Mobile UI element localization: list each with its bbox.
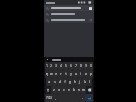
other: Search <box>46 13 49 16</box>
staticText: h <box>74 80 76 84</box>
staticText: 6 <box>70 64 72 68</box>
button[interactable]: Search <box>44 5 94 11</box>
button[interactable]: g <box>67 78 72 86</box>
button[interactable]: o <box>83 70 88 78</box>
staticText: b <box>73 88 75 92</box>
button[interactable]: e <box>53 70 58 78</box>
staticText: 7 <box>75 64 77 68</box>
staticText: 3 <box>55 64 57 68</box>
staticText: , <box>55 96 56 100</box>
staticText: 9 <box>85 64 87 68</box>
button[interactable]: k <box>82 78 87 86</box>
button[interactable]: p <box>88 70 93 78</box>
button[interactable]: m <box>81 86 86 94</box>
staticText: t <box>65 72 67 76</box>
button[interactable]: t <box>63 70 68 78</box>
button[interactable]: u <box>73 70 78 78</box>
staticText: m <box>82 88 85 92</box>
button[interactable]: f <box>62 78 67 86</box>
button[interactable]: x <box>56 86 61 94</box>
other: Search <box>46 7 49 10</box>
button[interactable]: Search <box>44 11 94 17</box>
staticText: 2 <box>50 64 52 68</box>
button[interactable]: i <box>78 70 83 78</box>
staticText: o <box>85 72 87 76</box>
button[interactable]: w <box>49 70 53 78</box>
other: Search <box>46 19 49 22</box>
staticText: s <box>54 80 56 84</box>
staticText: 8 <box>80 64 82 68</box>
button[interactable]: 5 <box>63 62 68 70</box>
button[interactable]: 2 <box>49 62 53 70</box>
button[interactable]: v <box>66 86 71 94</box>
button[interactable]: 1 <box>45 62 49 70</box>
button[interactable]: Search <box>44 17 94 23</box>
staticText: 0 <box>90 64 92 68</box>
button[interactable]: 8 <box>78 62 83 70</box>
button[interactable]: h <box>72 78 77 86</box>
staticText: k <box>84 80 86 84</box>
staticText: u <box>75 72 77 76</box>
button[interactable]: 0 <box>88 62 93 70</box>
staticText: l <box>89 80 90 84</box>
staticText: x <box>58 88 60 92</box>
other: Insert suggestion <box>89 19 92 22</box>
staticText: j <box>79 80 80 84</box>
button[interactable]: Enter <box>85 94 93 102</box>
button[interactable]: b <box>71 86 76 94</box>
staticText: n <box>78 88 80 92</box>
button[interactable]: . <box>80 94 85 102</box>
staticText: z <box>53 88 55 92</box>
staticText: ?123 <box>46 96 52 100</box>
other: Voice input <box>46 58 49 61</box>
staticText: f <box>64 80 66 84</box>
button[interactable]: s <box>52 78 57 86</box>
staticText: 5 <box>65 64 67 68</box>
staticText: v <box>68 88 70 92</box>
staticText: a <box>48 80 50 84</box>
staticText: c <box>63 88 65 92</box>
staticText: w <box>50 72 53 76</box>
staticText: r <box>60 72 62 76</box>
staticText: i <box>80 72 81 76</box>
button[interactable]: l <box>87 78 92 86</box>
staticText: . <box>82 96 83 100</box>
button[interactable]: ?123 <box>45 94 53 102</box>
button[interactable]: 7 <box>73 62 78 70</box>
button[interactable]: Shift <box>45 86 51 94</box>
button[interactable]: z <box>51 86 56 94</box>
button[interactable]: j <box>77 78 82 86</box>
staticText: d <box>59 80 61 84</box>
button[interactable]: c <box>61 86 66 94</box>
staticText: y <box>70 72 72 76</box>
button[interactable]: y <box>68 70 73 78</box>
staticText: q <box>46 72 48 76</box>
button[interactable]: Copy <box>89 7 92 10</box>
button[interactable]: Backspace <box>86 86 93 94</box>
button[interactable]: r <box>58 70 63 78</box>
button[interactable]: 9 <box>83 62 88 70</box>
button[interactable]: , <box>53 94 58 102</box>
button[interactable]: a <box>46 78 52 86</box>
staticText: 1 <box>46 64 48 68</box>
staticText: p <box>90 72 92 76</box>
button[interactable]: 4 <box>58 62 63 70</box>
button[interactable]: q <box>45 70 49 78</box>
staticText: e <box>55 72 57 76</box>
button[interactable]: d <box>57 78 62 86</box>
staticText: g <box>69 80 71 84</box>
staticText: 4 <box>60 64 62 68</box>
button[interactable]: 3 <box>53 62 58 70</box>
button[interactable] <box>52 59 61 61</box>
button[interactable]: 6 <box>68 62 73 70</box>
button[interactable]: n <box>76 86 81 94</box>
